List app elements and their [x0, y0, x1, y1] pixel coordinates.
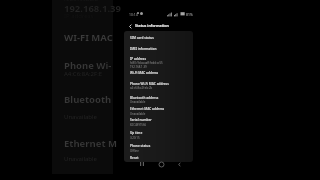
staticText: Phone Wi-: [64, 59, 112, 72]
button[interactable]: Recents: [137, 159, 147, 169]
button[interactable]: Home: [156, 159, 166, 169]
staticText: Up time: [130, 131, 143, 135]
staticText: 192.168.1.39: [130, 65, 147, 69]
staticText: Bluetooth: [64, 93, 112, 106]
staticText: 81%: [186, 12, 193, 17]
staticText: Bluetooth address: [130, 96, 159, 100]
staticText: Phone status: [130, 144, 151, 148]
staticText: IP address: [130, 57, 146, 61]
staticText: fe80::9cba:aaff:fedd:cc55: [130, 61, 163, 65]
staticText: Ethernet MAC address: [130, 107, 165, 111]
staticText: Unavailable: [64, 113, 97, 121]
button[interactable]: Back: [126, 22, 135, 31]
staticText: IMEI information: [130, 47, 157, 51]
staticText: WI-FI MAC: [64, 31, 113, 44]
staticText: Status information: [135, 23, 169, 28]
staticText: Reset: [130, 156, 139, 160]
staticText: Ethernet M: [64, 137, 117, 150]
staticText: 3:20:15: [130, 136, 140, 140]
staticText: Phone Wi-Fi MAC address: [130, 82, 169, 86]
staticText: A4:C6:8A:2F:E: [64, 70, 103, 78]
staticText: 192.168.1.39: [64, 2, 121, 15]
staticText: Unavailable: [64, 155, 97, 163]
staticText: Offline: [130, 149, 139, 153]
staticText: Unavailable: [130, 100, 146, 104]
staticText: a4:c6:8a:2f:eb:2b: [130, 86, 153, 90]
staticText: SIM card status: [130, 36, 154, 40]
staticText: Wi-Fi MAC address: [130, 71, 159, 75]
staticText: 82C4891566: [130, 123, 147, 127]
staticText: Serial number: [130, 118, 152, 122]
button[interactable]: Back: [174, 159, 184, 169]
staticText: Unavailable: [130, 112, 146, 116]
staticText: 10:14: [129, 12, 138, 17]
